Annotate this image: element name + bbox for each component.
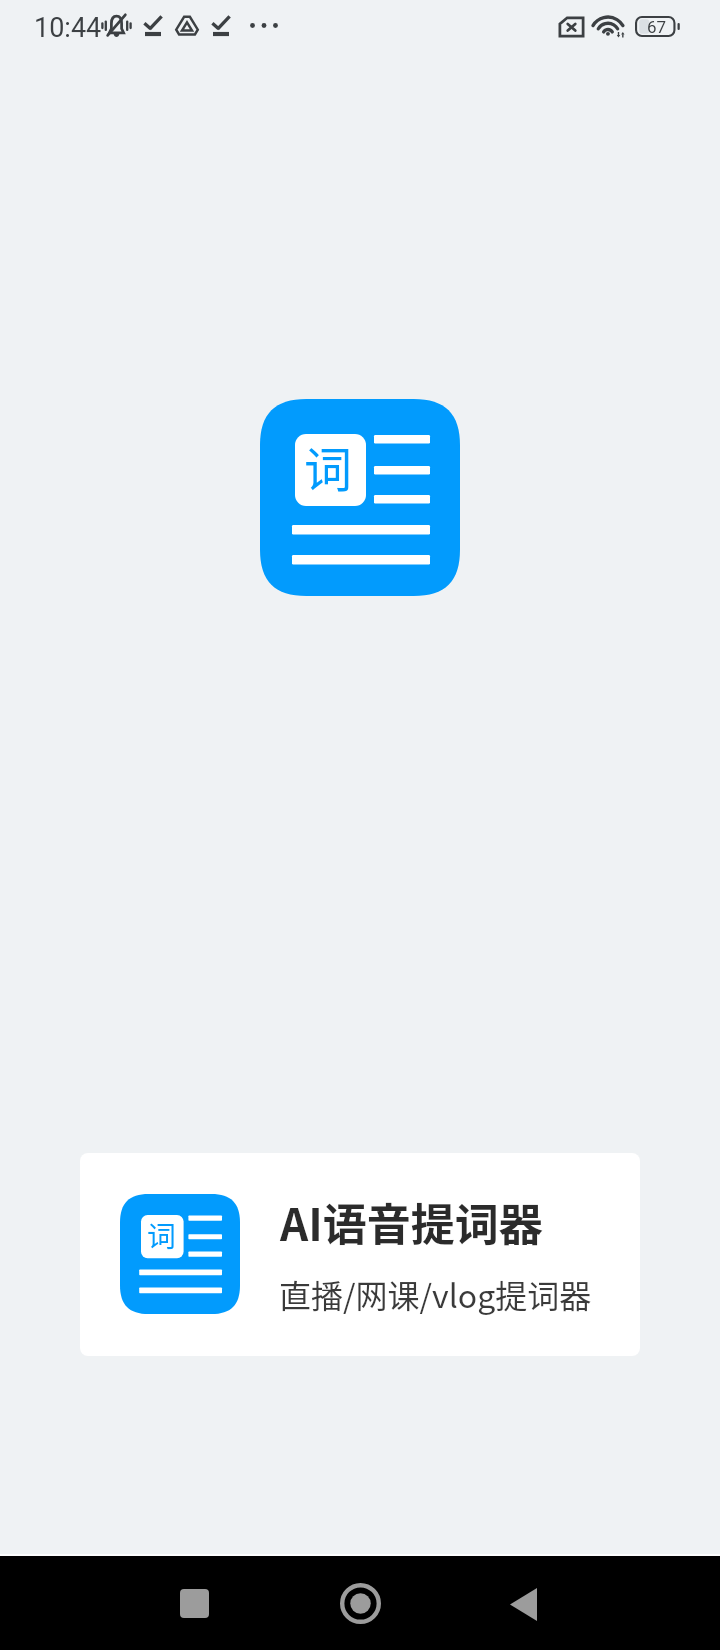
button[interactable]: Home <box>315 1558 405 1648</box>
button[interactable]: Back <box>478 1559 568 1649</box>
button[interactable]: 词 <box>80 1153 640 1356</box>
staticText: 词 <box>304 431 353 501</box>
staticText: 10:44 <box>34 12 102 44</box>
staticText: 67 <box>647 17 667 37</box>
staticText: 直播/网课/vlog提词器 <box>279 1271 592 1317</box>
staticText: AI语音提词器 <box>280 1190 543 1254</box>
button[interactable]: Recent apps <box>149 1558 239 1648</box>
staticText: 词 <box>147 1214 176 1256</box>
